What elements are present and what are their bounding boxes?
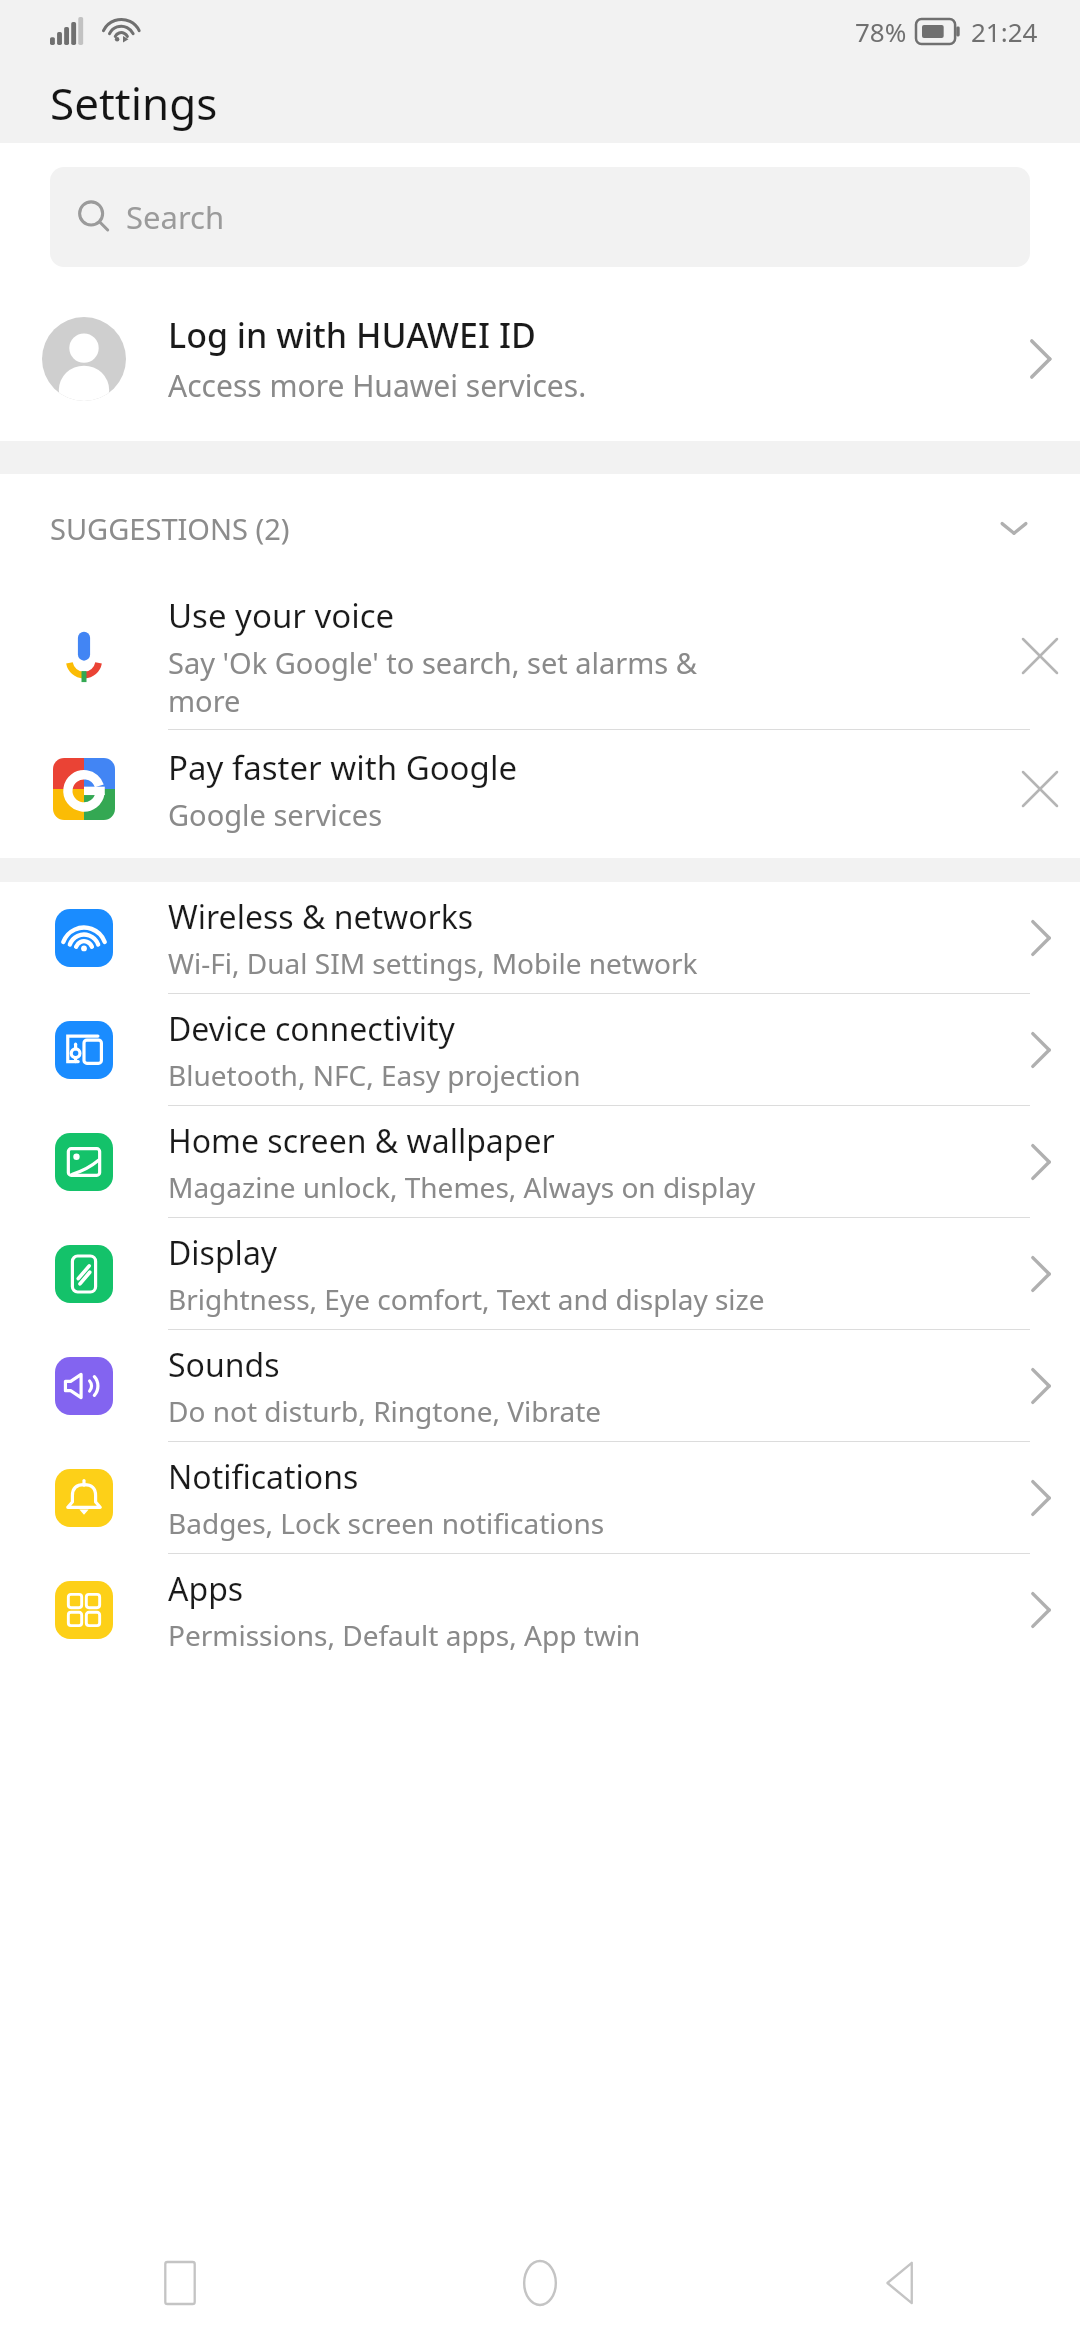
staticText: 78% (855, 14, 907, 49)
button[interactable]: Device connectivity (0, 994, 1080, 1106)
staticText: Notifications (168, 1455, 359, 1499)
button[interactable]: Log in with HUAWEI ID (0, 289, 1080, 429)
staticText: Wireless & networks (168, 895, 474, 939)
button[interactable]: SUGGESTIONS (2) (0, 474, 1080, 582)
button[interactable]: Use your voice (0, 582, 1080, 730)
staticText: SUGGESTIONS (2) (50, 509, 992, 548)
button[interactable]: Dismiss Use your voice (1000, 582, 1080, 730)
staticText: Google services (168, 795, 383, 834)
button[interactable]: Sounds (0, 1330, 1080, 1442)
button[interactable]: Home (360, 2225, 720, 2340)
staticText: Pay faster with Google (168, 745, 518, 790)
staticText: Access more Huawei services. (168, 365, 587, 406)
staticText: Do not disturb, Ringtone, Vibrate (168, 1392, 602, 1430)
button[interactable]: Back (720, 2225, 1080, 2340)
staticText: Wi-Fi, Dual SIM settings, Mobile network (168, 944, 698, 982)
staticText: Badges, Lock screen notifications (168, 1504, 605, 1542)
staticText: Log in with HUAWEI ID (168, 312, 536, 358)
button[interactable]: Home screen & wallpaper (0, 1106, 1080, 1218)
button[interactable]: Dismiss Pay faster with Google (1000, 730, 1080, 848)
staticText: 21:24 (971, 14, 1038, 49)
button[interactable]: Pay faster with Google (0, 730, 1080, 848)
staticText: Settings (50, 73, 218, 133)
staticText: Display (168, 1231, 278, 1275)
staticText: Say 'Ok Google' to search, set alarms & … (168, 643, 698, 720)
staticText: Use your voice (168, 593, 395, 638)
staticText: Apps (168, 1567, 244, 1611)
staticText: Bluetooth, NFC, Easy projection (168, 1056, 581, 1094)
staticText: Home screen & wallpaper (168, 1119, 555, 1163)
staticText: Magazine unlock, Themes, Always on displ… (168, 1168, 756, 1206)
staticText: Search (126, 196, 225, 238)
staticText: Permissions, Default apps, App twin (168, 1616, 641, 1654)
staticText: Brightness, Eye comfort, Text and displa… (168, 1280, 765, 1318)
button[interactable]: Apps (0, 1554, 1080, 1666)
other: Collapse suggestions (992, 506, 1036, 550)
button[interactable]: Notifications (0, 1442, 1080, 1554)
button[interactable]: Search (50, 167, 1030, 267)
staticText: Sounds (168, 1343, 280, 1387)
button[interactable]: Recents (0, 2225, 360, 2340)
staticText: Device connectivity (168, 1007, 455, 1051)
button[interactable]: Wireless & networks (0, 882, 1080, 994)
button[interactable]: Display (0, 1218, 1080, 1330)
